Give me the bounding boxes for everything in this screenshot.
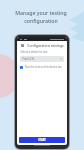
button[interactable]: Menu (20, 43, 25, 48)
staticText: Pixel 4 XL (22, 57, 35, 61)
staticText: configuration (24, 17, 58, 24)
staticText: Select a device to test (20, 50, 48, 54)
staticText: START (38, 138, 46, 142)
staticText: Run the test on this device too (25, 65, 62, 69)
staticText: Manage your testing (15, 9, 67, 16)
staticText: Configuration settings (27, 43, 64, 48)
button[interactable]: START (19, 137, 65, 143)
button[interactable]: Run the test on this device too (20, 65, 64, 69)
button[interactable]: Pixel 4 XL (20, 56, 64, 62)
